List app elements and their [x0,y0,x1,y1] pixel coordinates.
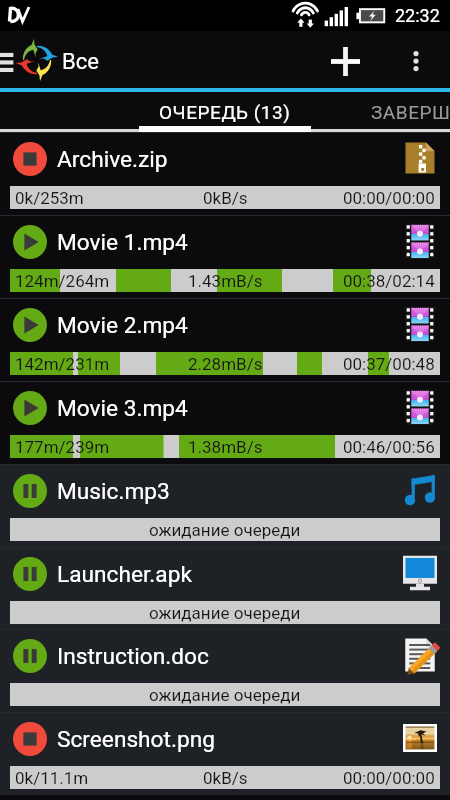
staticText: Instruction.doc [57,643,209,670]
staticText: 0kB/s [203,768,248,788]
button[interactable]: Launcher.apk [0,547,450,630]
staticText: 0k/253m [15,188,84,208]
staticText: 1.38mB/s [188,437,263,457]
staticText: 0kB/s [203,188,248,208]
staticText: Launcher.apk [57,561,192,588]
staticText: 00:00/00:00 [343,188,435,208]
staticText: 22:32 [395,5,440,26]
button[interactable]: Movie 1.mp4 [0,215,450,298]
staticText: 177m/239m [15,437,110,457]
staticText: Music.mp3 [57,478,170,505]
button[interactable]: Music.mp3 [0,464,450,547]
staticText: 124m/264m [15,271,110,291]
staticText: ЗАВЕРШЕНО [371,101,450,123]
staticText: Screenshot.png [57,726,215,753]
staticText: 00:37/00:48 [343,354,435,374]
button[interactable]: Add download [317,31,373,92]
button[interactable]: Open navigation menu [0,31,16,92]
button[interactable]: Archive.zip [0,132,450,215]
staticText: 00:00/00:00 [343,768,435,788]
staticText: 00:46/00:56 [343,437,435,457]
staticText: 2.28mB/s [188,354,263,374]
staticText: Movie 3.mp4 [57,395,188,422]
staticText: Archive.zip [57,146,168,173]
staticText: Все [62,49,99,75]
staticText: 0k/11.1m [15,768,89,788]
staticText: 142m/231m [15,354,110,374]
button[interactable]: ОЧЕРЕДЬ (13) [139,92,311,132]
staticText: ожидание очереди [149,520,301,540]
staticText: Movie 2.mp4 [57,312,188,339]
button[interactable]: ЗАВЕРШЕНО [311,92,450,132]
staticText: ожидание очереди [149,603,301,623]
staticText: 00:38/02:14 [343,271,435,291]
staticText: ОЧЕРЕДЬ (13) [159,101,291,123]
button[interactable]: Instruction.doc [0,629,450,712]
staticText: ожидание очереди [149,685,301,705]
button[interactable]: Movie 3.mp4 [0,381,450,464]
staticText: 1.43mB/s [188,271,263,291]
staticText: Movie 1.mp4 [57,229,188,256]
button[interactable]: More options [395,31,437,92]
button[interactable]: Movie 2.mp4 [0,298,450,381]
button[interactable]: Screenshot.png [0,712,450,795]
